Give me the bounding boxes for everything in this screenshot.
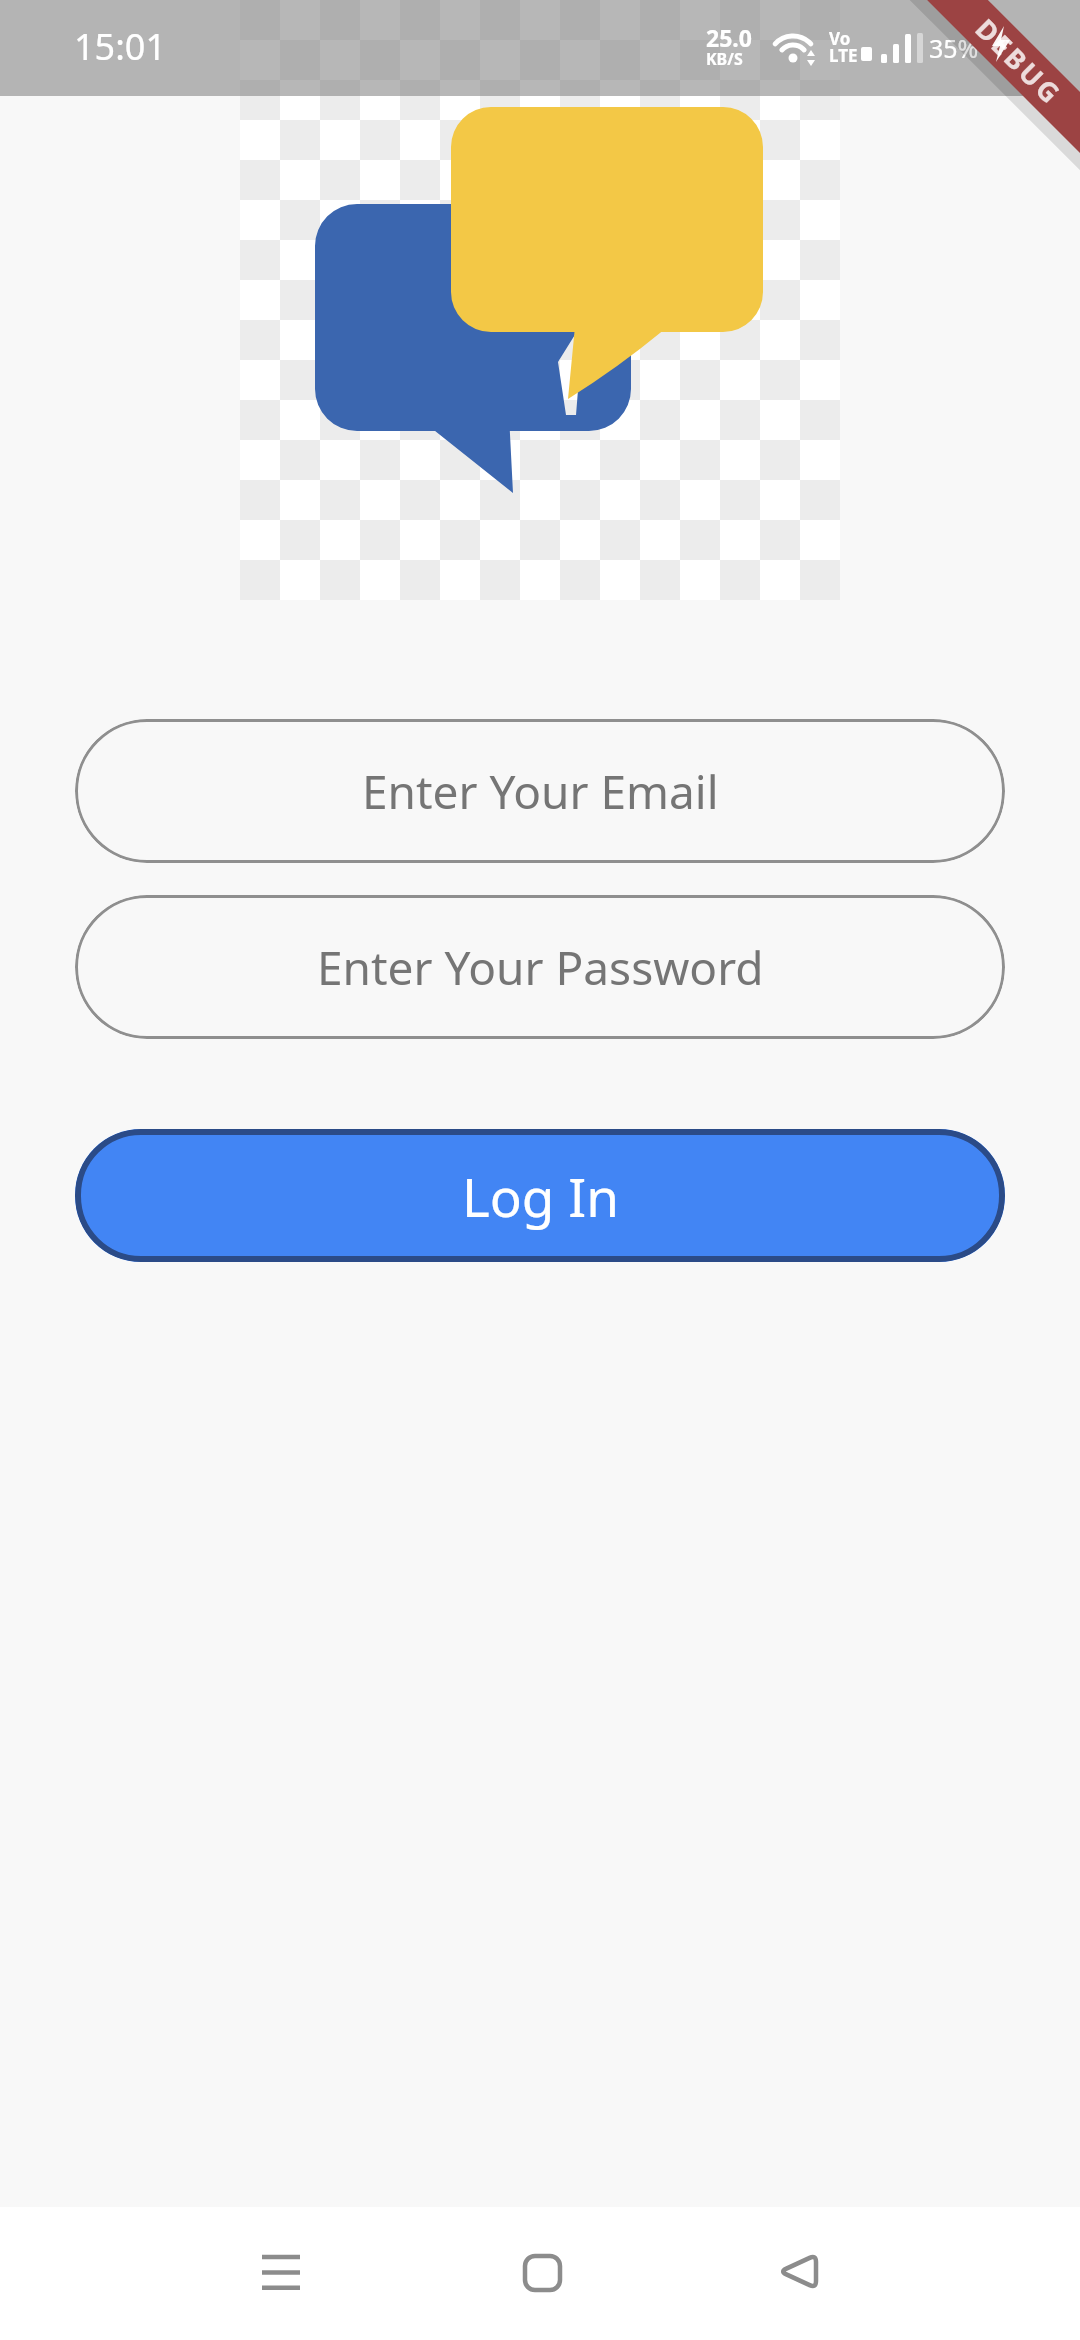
staticText: 25.0 <box>706 22 752 53</box>
button[interactable] <box>492 2222 592 2322</box>
staticText: 15:01 <box>74 22 167 71</box>
staticText: LTE <box>829 44 858 67</box>
button[interactable] <box>231 2222 331 2322</box>
button[interactable] <box>748 2222 848 2322</box>
staticText: 35% <box>929 31 979 65</box>
staticText: Enter Your Password <box>317 936 764 999</box>
button[interactable]: Enter Your Password <box>75 895 1005 1039</box>
staticText: Vo <box>829 27 851 50</box>
button[interactable]: Log In <box>75 1129 1005 1262</box>
staticText: Log In <box>462 1160 619 1232</box>
staticText: DEBUG <box>968 10 1070 113</box>
button[interactable]: Enter Your Email <box>75 719 1005 863</box>
staticText: KB/S <box>706 48 743 70</box>
staticText: Enter Your Email <box>362 760 719 823</box>
